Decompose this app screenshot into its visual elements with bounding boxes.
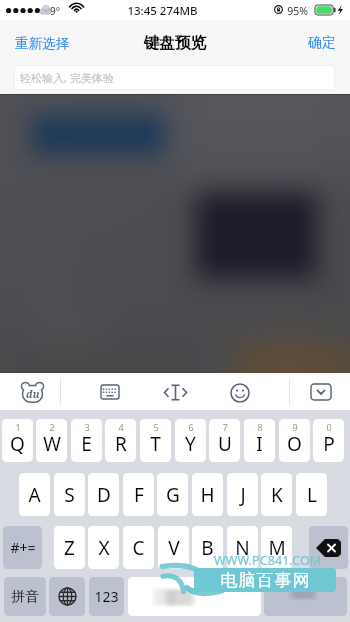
button[interactable]: 8 [244, 419, 275, 462]
staticText: 123 [94, 587, 119, 606]
staticText: 4 [118, 421, 124, 433]
staticText: P [323, 431, 335, 457]
staticText: Z [64, 535, 75, 561]
button[interactable]: K [261, 473, 292, 516]
staticText: 键盘预览 [144, 33, 206, 53]
staticText: O [287, 431, 302, 457]
button[interactable]: M [261, 526, 292, 569]
staticText: U [218, 431, 232, 457]
button[interactable]: 重新选择 [6, 30, 78, 56]
staticText: 95% [287, 4, 308, 18]
staticText: 8 [257, 421, 263, 433]
button[interactable]: H [192, 473, 223, 516]
button[interactable]: V [158, 526, 189, 569]
button[interactable]: #+= [3, 526, 42, 569]
staticText: #+= [10, 538, 36, 557]
staticText: 1 [15, 421, 21, 433]
staticText: Y [185, 431, 196, 457]
button[interactable]: Backspace [309, 526, 348, 569]
staticText: C [132, 535, 145, 561]
button[interactable]: 2 [36, 419, 67, 462]
staticText: 电脑百事网 [220, 570, 310, 591]
staticText: 9° [50, 4, 60, 18]
button[interactable]: N [227, 526, 258, 569]
staticText: J [240, 482, 246, 508]
button[interactable]: F [123, 473, 154, 516]
button[interactable]: Hide keyboard [296, 373, 345, 410]
button[interactable]: 5 [140, 419, 171, 462]
staticText: 3 [84, 421, 90, 433]
button[interactable]: Switch language [49, 577, 85, 616]
button[interactable]: 1 [2, 419, 33, 462]
staticText: 9 [292, 421, 298, 433]
staticText: 7 [222, 421, 228, 433]
staticText: 0 [326, 421, 332, 433]
button[interactable]: 0 [313, 419, 344, 462]
button[interactable]: C [123, 526, 154, 569]
staticText: S [64, 482, 75, 508]
staticText: G [166, 482, 180, 508]
button[interactable]: D [88, 473, 119, 516]
button[interactable]: G [157, 473, 188, 516]
staticText: M [268, 535, 286, 561]
button[interactable]: Space [128, 577, 261, 616]
button[interactable]: Move cursor [146, 373, 205, 410]
staticText: I [256, 431, 263, 457]
staticText: 6 [188, 421, 194, 433]
staticText: N [235, 535, 250, 561]
staticText: F [134, 482, 144, 508]
button[interactable]: 轻松输入, 完美体验 [14, 65, 335, 90]
staticText: WWW.PC841.COM [214, 552, 322, 569]
button[interactable]: Z [54, 526, 85, 569]
staticText: V [168, 535, 180, 561]
staticText: A [28, 482, 41, 508]
button[interactable]: 123 [89, 577, 124, 616]
button[interactable]: S [54, 473, 85, 516]
button[interactable]: A [19, 473, 50, 516]
button[interactable]: X [88, 526, 119, 569]
staticText: L [307, 482, 317, 508]
button[interactable]: Enter [264, 577, 347, 616]
button[interactable]: J [227, 473, 258, 516]
staticText: 确定 [308, 34, 336, 52]
staticText: 拼音 [11, 588, 39, 606]
button[interactable]: B [192, 526, 223, 569]
staticText: K [271, 482, 283, 508]
staticText: 13:45 274MB [127, 3, 198, 19]
button[interactable]: 确定 [300, 30, 344, 56]
staticText: 2 [49, 421, 55, 433]
staticText: R [115, 431, 127, 457]
button[interactable]: 拼音 [4, 577, 46, 616]
button[interactable]: L [296, 473, 327, 516]
button[interactable]: 6 [175, 419, 206, 462]
staticText: du [26, 387, 40, 401]
staticText: 重新选择 [15, 35, 69, 52]
staticText: E [81, 431, 92, 457]
button[interactable]: 3 [71, 419, 102, 462]
staticText: D [97, 482, 111, 508]
staticText: 5 [153, 421, 159, 433]
staticText: B [201, 535, 214, 561]
staticText: H [200, 482, 215, 508]
button[interactable]: Keyboard settings [80, 373, 140, 410]
staticText: 轻松输入, 完美体验 [20, 70, 114, 85]
staticText: Q [10, 431, 25, 457]
staticText: T [150, 431, 161, 457]
button[interactable]: 9 [279, 419, 310, 462]
button[interactable]: Baidu input [5, 373, 60, 410]
staticText: W [43, 431, 61, 457]
staticText: X [98, 535, 110, 561]
button[interactable]: 7 [209, 419, 240, 462]
button[interactable]: Emoji [211, 373, 269, 410]
button[interactable]: 4 [105, 419, 136, 462]
